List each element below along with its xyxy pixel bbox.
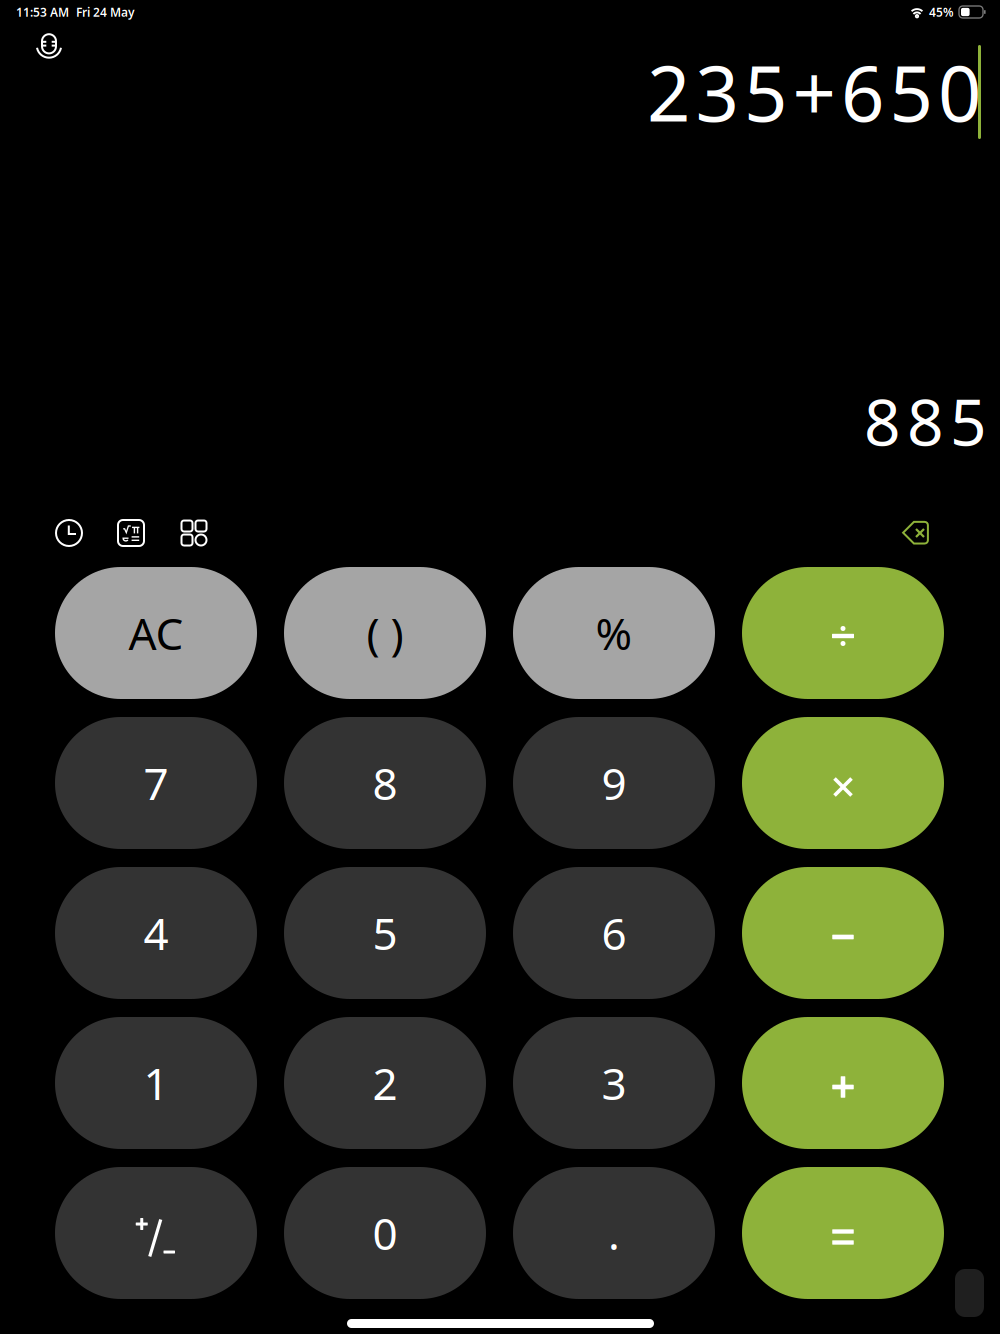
staticText: 2 <box>372 1054 397 1112</box>
staticText: . <box>608 1204 620 1262</box>
staticText: 11:53 AM <box>16 4 69 20</box>
staticText: 7 <box>143 754 168 812</box>
button[interactable]: Multiply <box>742 717 944 849</box>
button[interactable]: Scientific keypad <box>109 511 153 555</box>
staticText: 235+650 <box>647 41 981 142</box>
button[interactable]: 3 <box>513 1017 715 1149</box>
staticText: 1 <box>143 1054 168 1112</box>
button[interactable]: ( ) <box>284 567 486 699</box>
staticText: 45% <box>929 4 954 20</box>
button[interactable]: 9 <box>513 717 715 849</box>
button[interactable]: Keypad options <box>172 511 216 555</box>
staticText: Fri 24 May <box>76 4 135 20</box>
staticText: ( ) <box>366 604 403 662</box>
staticText: 885 <box>864 378 987 463</box>
button[interactable]: Subtract <box>742 867 944 999</box>
staticText: % <box>595 604 632 662</box>
button[interactable]: 1 <box>55 1017 257 1149</box>
staticText: 6 <box>601 904 626 962</box>
staticText: AC <box>128 604 183 662</box>
button[interactable]: Add <box>742 1017 944 1149</box>
staticText: 5 <box>372 904 397 962</box>
button[interactable]: . <box>513 1167 715 1299</box>
button[interactable]: 2 <box>284 1017 486 1149</box>
button[interactable]: History <box>47 511 91 555</box>
button[interactable]: AC <box>55 567 257 699</box>
button[interactable]: 5 <box>284 867 486 999</box>
button[interactable]: 4 <box>55 867 257 999</box>
button[interactable]: 7 <box>55 717 257 849</box>
button[interactable]: 8 <box>284 717 486 849</box>
button[interactable]: Divide <box>742 567 944 699</box>
button[interactable]: Delete <box>894 511 938 555</box>
button[interactable]: % <box>513 567 715 699</box>
staticText: 0 <box>372 1204 397 1262</box>
staticText: 9 <box>601 754 626 812</box>
button[interactable]: Toggle sign <box>55 1167 257 1299</box>
staticText: 4 <box>143 904 168 962</box>
button[interactable]: Equals <box>742 1167 944 1299</box>
staticText: 8 <box>372 754 397 812</box>
button[interactable]: 0 <box>284 1167 486 1299</box>
button[interactable]: Dictate <box>27 22 71 66</box>
staticText: 3 <box>601 1054 626 1112</box>
button[interactable]: 6 <box>513 867 715 999</box>
